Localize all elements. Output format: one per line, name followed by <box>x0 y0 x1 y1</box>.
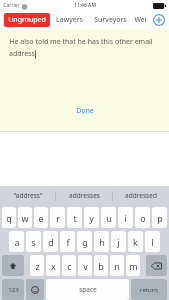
staticText: m <box>129 260 138 272</box>
button[interactable]: Done <box>68 103 102 119</box>
button[interactable]: l <box>145 231 160 252</box>
staticText: address <box>9 49 35 59</box>
staticText: d <box>48 236 54 248</box>
staticText: p <box>157 212 163 224</box>
staticText: c <box>67 260 72 272</box>
staticText: g <box>82 236 88 248</box>
button[interactable]: Wel <box>132 12 149 28</box>
staticText: Wel <box>134 15 147 25</box>
button[interactable]: s <box>26 231 41 252</box>
button[interactable]: a <box>9 231 24 252</box>
button[interactable]: c <box>62 255 76 276</box>
button[interactable]: w <box>18 207 32 228</box>
staticText: r <box>56 212 60 224</box>
button[interactable]: m <box>126 255 140 276</box>
staticText: o <box>140 212 146 224</box>
button[interactable]: u <box>101 207 116 228</box>
staticText: h <box>99 236 105 248</box>
button[interactable]: x <box>46 255 60 276</box>
button[interactable]: b <box>94 255 108 276</box>
staticText: return <box>140 286 158 294</box>
staticText: i <box>124 212 127 224</box>
staticText: t <box>73 212 77 224</box>
button[interactable]: Surveyors <box>89 12 132 28</box>
staticText: a <box>14 236 20 248</box>
staticText: e <box>38 212 44 224</box>
button[interactable]: f <box>60 231 75 252</box>
staticText: "address" <box>13 191 43 200</box>
staticText: addressed <box>125 191 157 200</box>
staticText: space <box>79 285 97 294</box>
button[interactable]: Shift <box>2 255 24 276</box>
staticText: s <box>31 236 36 248</box>
staticText: f <box>66 236 70 248</box>
staticText: z <box>35 260 40 272</box>
button[interactable]: p <box>152 207 167 228</box>
staticText: Carrier <box>3 2 20 9</box>
button[interactable]: addresses <box>56 186 112 205</box>
staticText: 123 <box>8 286 19 294</box>
button[interactable]: t <box>67 207 82 228</box>
staticText: Done <box>76 106 94 116</box>
staticText: k <box>133 236 138 248</box>
button[interactable]: k <box>128 231 143 252</box>
button[interactable]: z <box>30 255 44 276</box>
button[interactable]: r <box>50 207 65 228</box>
button[interactable]: e <box>34 207 48 228</box>
button[interactable]: Emoji <box>26 279 44 300</box>
staticText: l <box>151 236 154 248</box>
staticText: b <box>98 260 104 272</box>
button[interactable]: space <box>46 279 129 300</box>
button[interactable]: o <box>135 207 150 228</box>
staticText: n <box>114 260 120 272</box>
staticText: He also told me that he has this other e… <box>9 37 153 47</box>
staticText: Ungrouped <box>8 15 46 25</box>
button[interactable]: h <box>94 231 109 252</box>
staticText: y <box>89 212 94 224</box>
button[interactable]: 123 <box>2 279 24 300</box>
button[interactable]: i <box>118 207 133 228</box>
button[interactable]: g <box>77 231 92 252</box>
staticText: j <box>117 236 120 248</box>
staticText: Surveyors <box>94 15 127 25</box>
staticText: q <box>6 212 12 224</box>
staticText: Lawyers <box>56 15 83 25</box>
button[interactable]: "address" <box>0 186 55 205</box>
staticText: u <box>106 212 112 224</box>
staticText: 11:46 AM <box>74 2 96 9</box>
button[interactable]: d <box>43 231 58 252</box>
button[interactable]: Add group <box>153 14 165 26</box>
staticText: addresses <box>69 191 100 200</box>
button[interactable]: n <box>110 255 124 276</box>
button[interactable]: y <box>84 207 99 228</box>
button[interactable]: q <box>2 207 16 228</box>
button[interactable]: v <box>78 255 92 276</box>
button[interactable]: Lawyers <box>50 12 89 28</box>
button[interactable]: j <box>111 231 126 252</box>
button[interactable]: return <box>131 279 167 300</box>
button[interactable]: addressed <box>113 186 169 205</box>
button[interactable]: Backspace <box>146 255 167 276</box>
button[interactable]: Ungrouped <box>4 13 50 27</box>
staticText: v <box>83 260 88 272</box>
staticText: x <box>51 260 56 272</box>
staticText: w <box>21 212 29 224</box>
